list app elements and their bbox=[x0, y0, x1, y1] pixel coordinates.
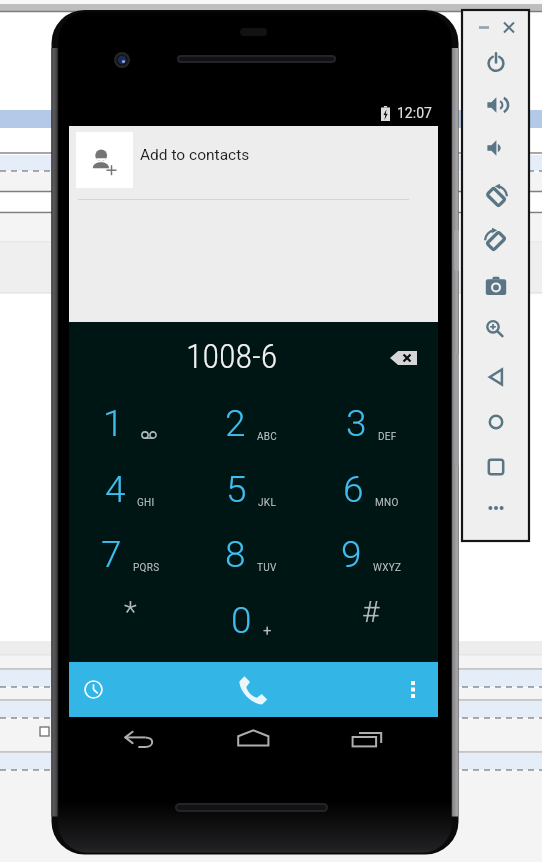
button[interactable]: Back bbox=[96, 717, 156, 775]
staticText: PQRS bbox=[133, 562, 160, 574]
staticText: WXYZ bbox=[373, 562, 402, 574]
button[interactable]: Home bbox=[208, 717, 268, 775]
staticText: JKL bbox=[258, 497, 277, 509]
button[interactable]: 9 bbox=[313, 528, 429, 580]
staticText: # bbox=[362, 594, 380, 629]
button[interactable]: More options bbox=[388, 662, 438, 717]
staticText: 0 bbox=[231, 599, 252, 642]
staticText: 1 bbox=[103, 402, 124, 445]
staticText: Add to contacts bbox=[140, 146, 250, 164]
button[interactable]: 3 bbox=[313, 397, 429, 449]
button[interactable]: # bbox=[313, 594, 429, 646]
staticText: 1008-6 bbox=[186, 336, 278, 376]
button[interactable]: Volume down bbox=[484, 136, 508, 160]
staticText: 9 bbox=[341, 533, 362, 576]
staticText: MNO bbox=[375, 497, 399, 509]
staticText: 8 bbox=[225, 533, 246, 576]
button[interactable]: Recents bbox=[323, 717, 383, 775]
button[interactable]: 7 bbox=[72, 528, 188, 580]
button[interactable]: 0 bbox=[193, 594, 309, 646]
button[interactable]: Call bbox=[117, 662, 388, 717]
button[interactable]: Rotate right bbox=[484, 228, 508, 252]
staticText: 5 bbox=[226, 468, 247, 511]
button[interactable]: 6 bbox=[313, 463, 429, 515]
button[interactable]: Overview bbox=[484, 455, 508, 479]
staticText: DEF bbox=[378, 431, 397, 443]
button[interactable]: 5 bbox=[193, 463, 309, 515]
button[interactable]: Back bbox=[484, 365, 508, 389]
button[interactable]: 1 bbox=[72, 397, 188, 449]
staticText: 2 bbox=[225, 402, 246, 445]
staticText: GHI bbox=[137, 497, 155, 509]
button[interactable]: 2 bbox=[193, 397, 309, 449]
button[interactable]: Rotate left bbox=[484, 184, 508, 208]
button[interactable]: Add to contacts bbox=[69, 126, 438, 190]
staticText: 3 bbox=[346, 402, 367, 445]
button[interactable]: Backspace bbox=[381, 340, 425, 376]
button[interactable]: 4 bbox=[72, 463, 188, 515]
button[interactable]: Volume up bbox=[484, 93, 508, 117]
button[interactable]: Home bbox=[484, 410, 508, 434]
staticText: 4 bbox=[105, 468, 126, 511]
staticText: + bbox=[263, 622, 272, 640]
staticText: ABC bbox=[257, 431, 278, 443]
staticText: TUV bbox=[257, 562, 277, 574]
button[interactable]: Power bbox=[484, 50, 508, 74]
staticText: 7 bbox=[101, 533, 122, 576]
staticText: 12:07 bbox=[397, 105, 432, 121]
button[interactable]: * bbox=[72, 594, 188, 646]
button[interactable]: Screenshot bbox=[484, 275, 508, 299]
button[interactable]: Call history bbox=[69, 662, 117, 717]
button[interactable]: 8 bbox=[193, 528, 309, 580]
button[interactable]: More bbox=[484, 496, 508, 520]
button[interactable]: Zoom bbox=[484, 317, 508, 341]
staticText: * bbox=[124, 594, 137, 629]
staticText: 6 bbox=[343, 468, 364, 511]
